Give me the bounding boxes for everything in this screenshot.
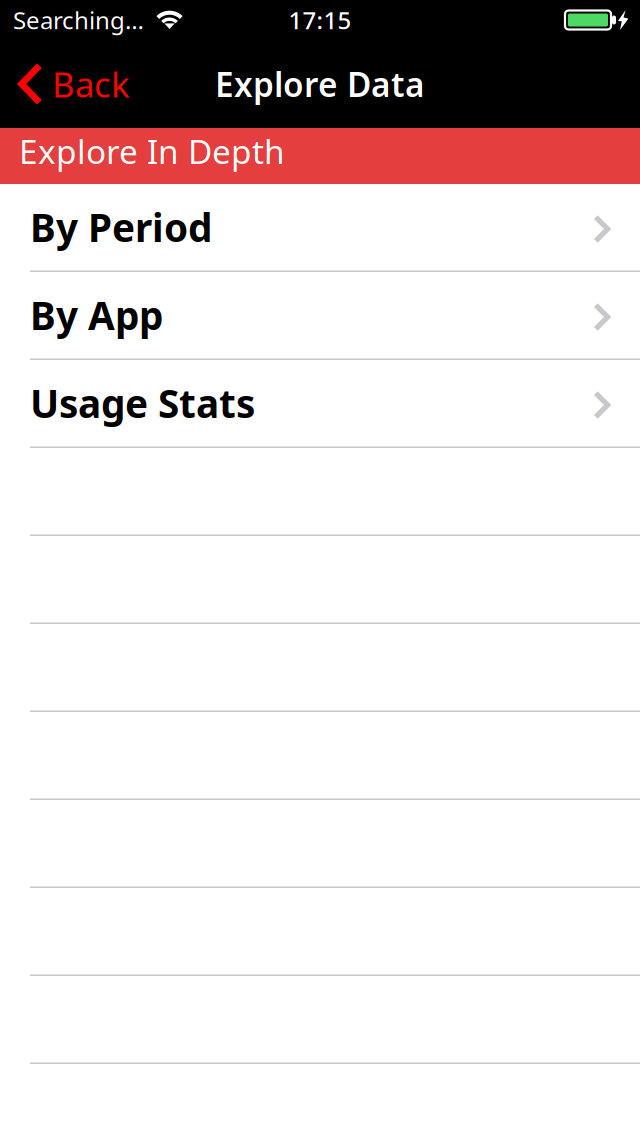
button[interactable]: By Period: [0, 184, 640, 272]
button[interactable]: By App: [0, 272, 640, 360]
button[interactable]: Usage Stats: [0, 360, 640, 448]
staticText: By Period: [30, 201, 212, 253]
staticText: Back: [52, 61, 130, 107]
staticText: Explore In Depth: [19, 129, 285, 173]
staticText: Usage Stats: [30, 377, 255, 429]
staticText: Explore Data: [215, 62, 425, 106]
staticText: 17:15: [288, 4, 351, 36]
staticText: Searching…: [13, 4, 144, 36]
button[interactable]: Back: [0, 40, 142, 128]
staticText: By App: [30, 289, 163, 341]
